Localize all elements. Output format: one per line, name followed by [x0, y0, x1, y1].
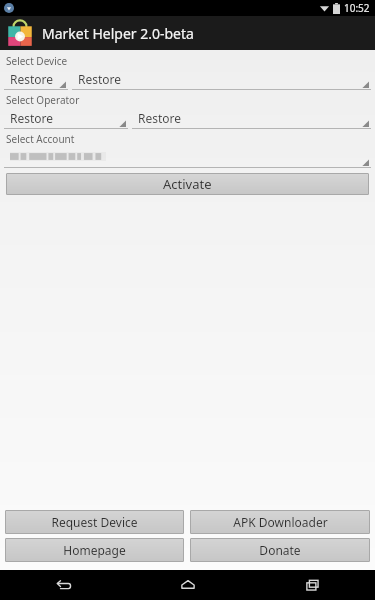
button[interactable]: App icon	[0, 16, 375, 50]
button[interactable]: Activate	[6, 173, 369, 195]
staticText: Restore	[78, 71, 122, 87]
button[interactable]: Home	[125, 570, 250, 600]
button[interactable]: Back	[0, 570, 125, 600]
button[interactable]: Homepage	[5, 538, 184, 562]
staticText: 10:52	[344, 1, 370, 15]
staticText: Restore	[10, 71, 54, 87]
button[interactable]: Recent apps	[250, 570, 375, 600]
staticText: Donate	[259, 542, 301, 558]
button[interactable]: Donate	[190, 538, 370, 562]
staticText: APK Downloader	[233, 514, 328, 530]
button[interactable]: APK Downloader	[190, 510, 370, 534]
staticText: Restore	[10, 110, 54, 126]
staticText: Restore	[138, 110, 182, 126]
staticText: Homepage	[63, 542, 126, 558]
button[interactable]: Restore	[4, 108, 128, 130]
staticText: Select Device	[6, 54, 68, 68]
staticText: Select Operator	[6, 93, 80, 107]
other: App icon	[6, 19, 34, 47]
button[interactable]: Request Device	[5, 510, 184, 534]
button[interactable]: Restore	[4, 69, 68, 91]
staticText: Select Account	[6, 132, 75, 146]
staticText: Market Helper 2.0-beta	[42, 24, 194, 43]
button[interactable]	[4, 147, 371, 169]
button[interactable]: Restore	[72, 69, 371, 91]
button[interactable]: Restore	[132, 108, 371, 130]
staticText: Activate	[163, 175, 212, 193]
staticText: Request Device	[51, 514, 138, 530]
